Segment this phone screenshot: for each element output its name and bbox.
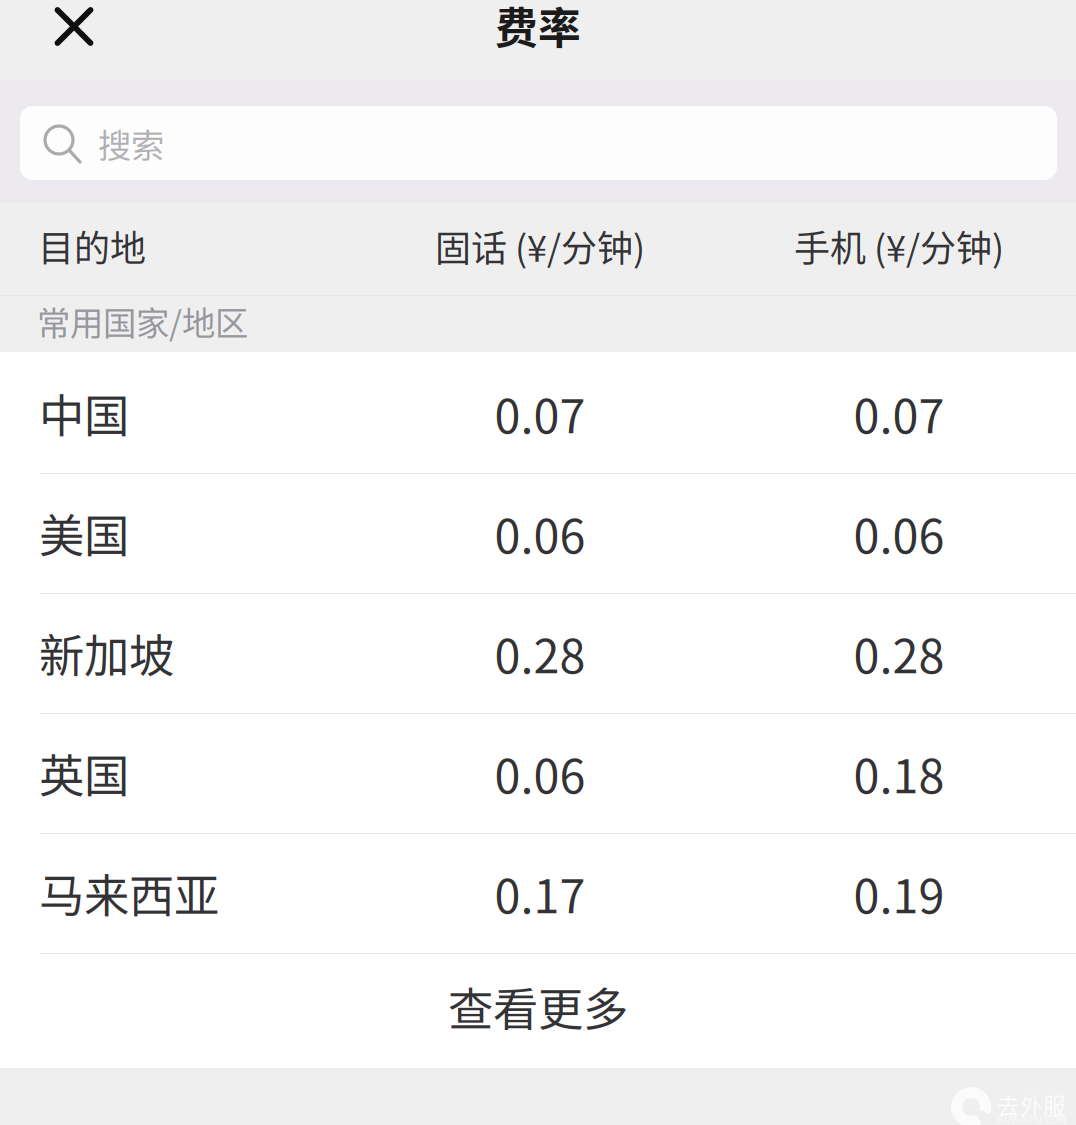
staticText: 费率 [495,0,581,56]
staticText: 0.19 [853,859,944,927]
staticText: 0.06 [853,499,944,567]
staticText: 手机 (¥/分钟) [794,220,1004,272]
button[interactable]: 马来西亚 [0,833,1076,953]
staticText: 0.07 [494,379,585,447]
button[interactable]: 中国 [0,353,1076,473]
staticText: 0.28 [494,619,585,687]
staticText: 固话 (¥/分钟) [435,220,645,272]
button[interactable]: 美国 [0,473,1076,593]
staticText: 0.17 [494,859,585,927]
staticText: 常用国家/地区 [37,297,248,345]
staticText: 查看更多 [448,974,628,1039]
button[interactable]: 新加坡 [0,593,1076,713]
staticText: 0.07 [853,379,944,447]
staticText: 0.28 [853,619,944,687]
staticText: 英国 [39,740,129,806]
button[interactable]: 搜索 [20,106,1057,180]
staticText: 搜索 [98,119,164,167]
staticText: 0.06 [494,499,585,567]
button[interactable]: 查看更多 [0,949,1076,1064]
staticText: 马来西亚 [39,860,219,926]
staticText: GUWAIFU.COM [997,1112,1066,1125]
staticText: 美国 [39,500,129,566]
staticText: 中国 [39,380,129,446]
staticText: 新加坡 [39,620,174,686]
staticText: 目的地 [38,220,146,272]
staticText: 0.06 [494,739,585,807]
button[interactable]: Close [43,0,105,62]
staticText: 去外服 [997,1088,1066,1121]
staticText: 0.18 [853,739,944,807]
button[interactable]: 英国 [0,713,1076,833]
